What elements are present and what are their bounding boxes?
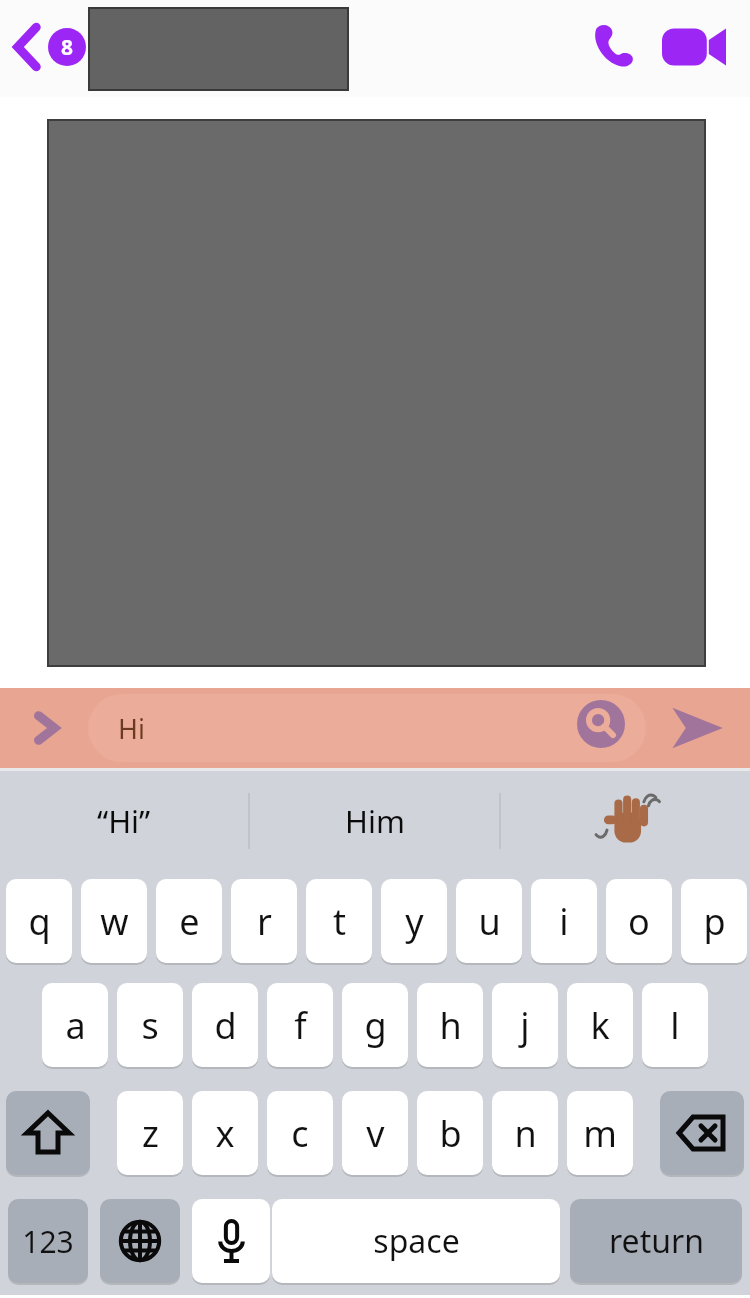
staticText: p [703, 897, 726, 946]
staticText: “Hi” [97, 800, 151, 842]
staticText: z [142, 1109, 159, 1158]
button[interactable]: Shift [6, 1091, 90, 1175]
staticText: s [141, 1001, 159, 1050]
button[interactable]: d [192, 983, 258, 1067]
staticText: d [214, 1001, 237, 1050]
staticText: 123 [22, 1221, 74, 1262]
button[interactable]: Hi [88, 694, 646, 762]
button[interactable]: i [531, 879, 597, 963]
staticText: Hi [118, 710, 145, 747]
staticText: return [609, 1219, 704, 1263]
button[interactable]: v [342, 1091, 408, 1175]
button[interactable]: Search [577, 692, 625, 740]
staticText: i [559, 897, 569, 946]
button[interactable]: Expand [18, 704, 74, 752]
staticText: k [590, 1001, 610, 1050]
staticText: 8 [61, 33, 74, 62]
button[interactable]: r [231, 879, 297, 963]
button[interactable]: a [42, 983, 108, 1067]
staticText: Him [345, 800, 405, 842]
staticText: space [373, 1219, 460, 1263]
button[interactable]: Voice input [192, 1199, 270, 1283]
button[interactable]: 123 [8, 1199, 88, 1283]
button[interactable]: l [642, 983, 708, 1067]
button[interactable]: h [417, 983, 483, 1067]
button[interactable]: m [567, 1091, 633, 1175]
button[interactable]: j [492, 983, 558, 1067]
staticText: y [405, 897, 424, 946]
staticText: u [478, 897, 501, 946]
button[interactable]: q [6, 879, 72, 963]
button[interactable]: f [267, 983, 333, 1067]
button[interactable]: “Hi” [0, 771, 248, 871]
staticText: c [291, 1109, 309, 1158]
staticText: w [100, 897, 129, 946]
button[interactable]: w [81, 879, 147, 963]
button[interactable]: s [117, 983, 183, 1067]
staticText: o [628, 897, 650, 946]
button[interactable]: Back, 8 unread [6, 14, 86, 80]
button[interactable]: o [606, 879, 672, 963]
button[interactable]: Backspace [660, 1091, 744, 1175]
staticText: j [520, 1001, 530, 1050]
button[interactable]: u [456, 879, 522, 963]
button[interactable]: Search emoji [577, 700, 625, 748]
button[interactable]: Waving hand emoji [501, 771, 750, 871]
staticText: t [333, 897, 346, 946]
button[interactable]: y [381, 879, 447, 963]
button[interactable]: Switch language [100, 1199, 180, 1283]
button[interactable]: return [570, 1199, 742, 1283]
button[interactable]: Him [250, 771, 499, 871]
staticText: l [670, 1001, 680, 1050]
button[interactable]: e [156, 879, 222, 963]
staticText: q [28, 897, 51, 946]
staticText: n [514, 1109, 537, 1158]
button[interactable]: k [567, 983, 633, 1067]
button[interactable]: Video call [662, 11, 734, 83]
button[interactable]: space [272, 1199, 560, 1283]
staticText: a [65, 1001, 86, 1050]
button[interactable]: b [417, 1091, 483, 1175]
button[interactable]: g [342, 983, 408, 1067]
staticText: x [215, 1109, 235, 1158]
button[interactable]: x [192, 1091, 258, 1175]
staticText: v [366, 1109, 385, 1158]
button[interactable]: Voice call [577, 11, 649, 83]
button[interactable]: t [306, 879, 372, 963]
staticText: b [439, 1109, 462, 1158]
staticText: h [439, 1001, 462, 1050]
staticText: r [257, 897, 272, 946]
button[interactable]: c [267, 1091, 333, 1175]
button[interactable]: z [117, 1091, 183, 1175]
button[interactable]: n [492, 1091, 558, 1175]
button[interactable]: Send [664, 698, 730, 758]
button[interactable] [88, 7, 349, 91]
staticText: e [179, 897, 200, 946]
button[interactable]: p [681, 879, 747, 963]
staticText: g [364, 1001, 387, 1050]
staticText: m [583, 1109, 617, 1158]
staticText: f [294, 1001, 307, 1050]
